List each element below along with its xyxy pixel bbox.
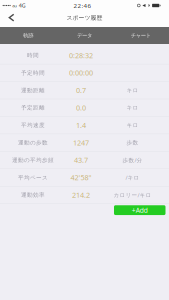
staticText: +Add (132, 206, 148, 215)
staticText: データ (77, 32, 92, 39)
staticText: 運動距離 (21, 87, 45, 94)
staticText: 軌跡 (23, 32, 33, 39)
staticText: 予定時間 (21, 69, 45, 76)
staticText: 運動の歩数 (18, 139, 48, 146)
staticText: 42'58" (70, 173, 91, 182)
staticText: 43.7 (74, 155, 88, 165)
staticText: 歩数 (126, 139, 138, 146)
staticText: 平均速度 (21, 122, 45, 129)
staticText: 予定距離 (21, 104, 45, 111)
staticText: 0.0 (76, 103, 86, 113)
staticText: 22:46 (73, 1, 91, 10)
staticText: カロリー/キロ (113, 191, 151, 199)
staticText: 1247 (73, 138, 89, 147)
staticText: 4G (19, 2, 26, 9)
staticText: 0:28:32 (69, 50, 93, 60)
button[interactable]: Back (0, 11, 23, 27)
staticText: 時間 (27, 52, 39, 59)
staticText: 214.2 (72, 190, 90, 200)
staticText: 歩数/分 (122, 156, 142, 164)
staticText: スポーツ履歴 (66, 14, 102, 21)
button[interactable]: 軌跡 (0, 27, 56, 44)
button[interactable]: データ (56, 27, 113, 44)
button[interactable]: チャート (113, 27, 169, 44)
staticText: キロ (126, 104, 138, 111)
staticText: 運動効率 (21, 191, 45, 198)
staticText: キロ (126, 122, 138, 129)
staticText: 平均ペース (18, 174, 48, 181)
staticText: 運動の平均歩頻 (12, 156, 54, 164)
staticText: /キロ (125, 174, 139, 181)
staticText: 0.7 (76, 85, 86, 95)
button[interactable]: +Add (114, 205, 165, 215)
staticText: チャート (131, 32, 151, 39)
staticText: 0:00:00 (69, 68, 93, 78)
staticText: 1.4 (76, 120, 86, 130)
staticText: キロ (126, 87, 138, 94)
staticText: au (12, 3, 17, 8)
